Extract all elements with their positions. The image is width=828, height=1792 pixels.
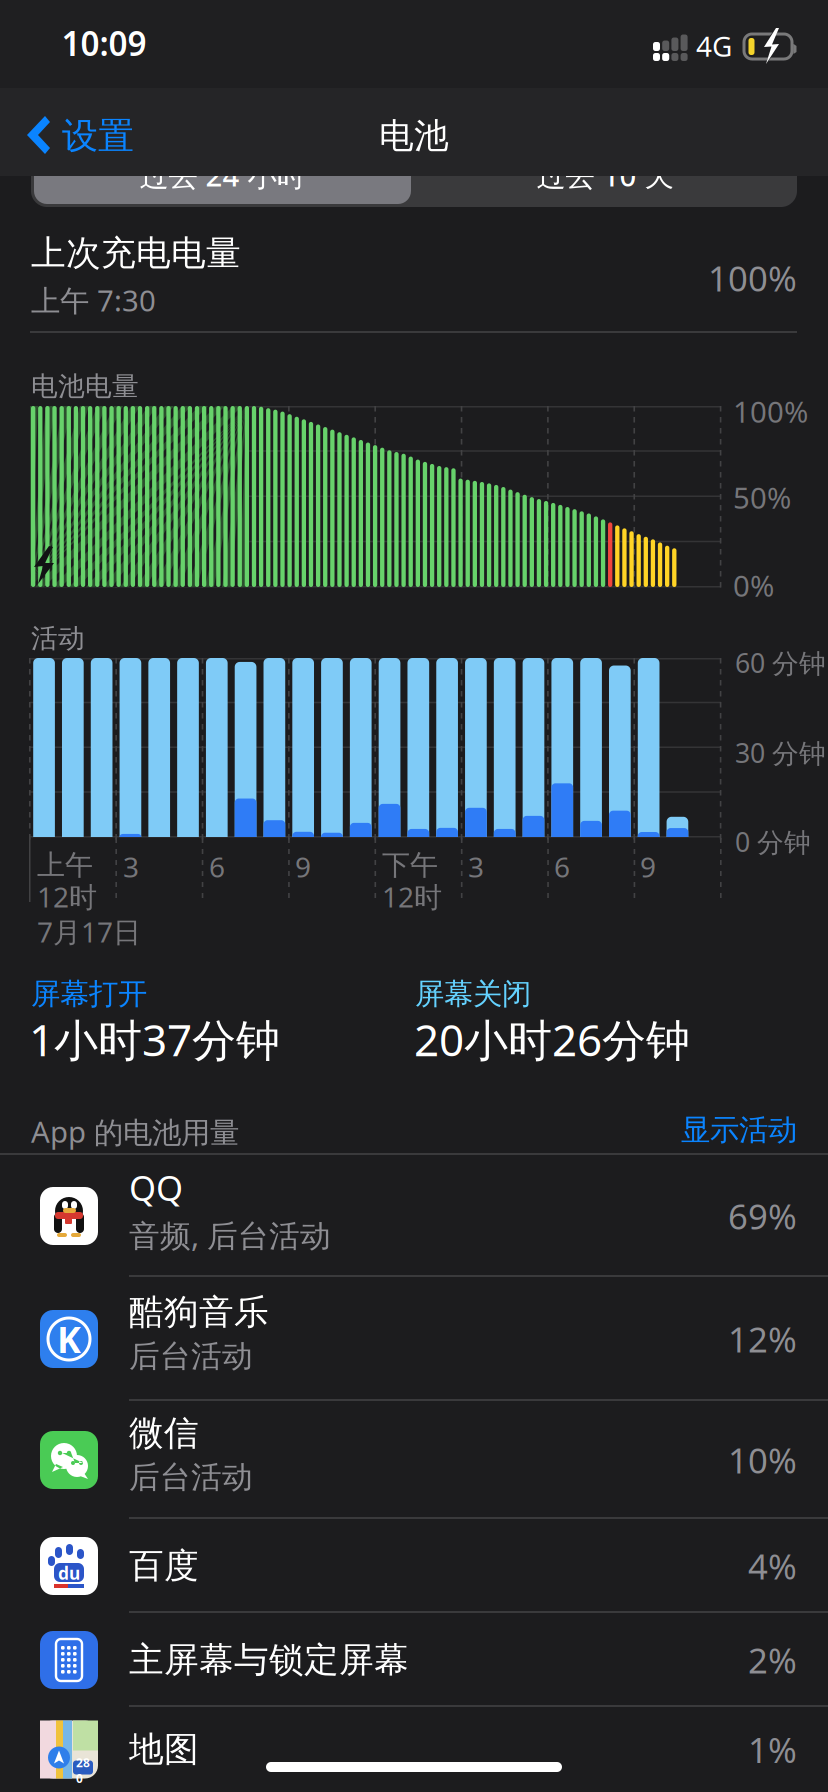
staticText: 12时 [382, 878, 442, 915]
staticText: App 的电池用量 [31, 1112, 239, 1151]
staticText: 屏幕打开 [31, 976, 147, 1012]
staticText: 20小时26分钟 [414, 1010, 690, 1068]
staticText: 6 [209, 848, 225, 885]
staticText: 地图 [129, 1728, 199, 1771]
button[interactable]: 微信 [0, 1401, 828, 1519]
staticText: 2% [748, 1637, 797, 1683]
staticText: 30 分钟 [735, 735, 826, 770]
staticText: 60 分钟 [735, 645, 826, 680]
staticText: 7月17日 [37, 913, 141, 950]
staticText: 9 [295, 848, 311, 885]
staticText: 1% [748, 1726, 797, 1772]
staticText: 微信 [129, 1412, 199, 1454]
staticText: 后台活动 [129, 1337, 253, 1375]
staticText: 4G [696, 27, 732, 65]
staticText: 10:09 [61, 21, 146, 65]
staticText: 100% [733, 392, 808, 431]
button[interactable]: K [0, 1277, 828, 1401]
staticText: 上午 7:30 [31, 281, 156, 320]
staticText: 0% [733, 566, 774, 605]
staticText: 活动 [31, 622, 85, 655]
staticText: 69% [728, 1193, 797, 1239]
staticText: 电池 [379, 115, 449, 157]
staticText: 下午 [382, 848, 438, 882]
staticText: 1小时37分钟 [29, 1010, 280, 1068]
staticText: 12% [728, 1316, 797, 1362]
staticText: 9 [640, 848, 656, 885]
staticText: 10% [728, 1437, 797, 1483]
staticText: 0 分钟 [735, 824, 811, 859]
staticText: 过去 10 天 [536, 155, 673, 194]
staticText: QQ [129, 1165, 183, 1211]
button[interactable]: du [0, 1519, 828, 1613]
staticText: 6 [554, 848, 570, 885]
staticText: 电池电量 [31, 370, 139, 403]
staticText: 280 [76, 1755, 90, 1786]
staticText: 100% [708, 255, 797, 301]
staticText: K [57, 1315, 81, 1363]
staticText: 音频, 后台活动 [129, 1215, 331, 1255]
staticText: 3 [468, 848, 484, 885]
staticText: 上午 [37, 848, 93, 882]
button[interactable]: 280 [0, 1707, 828, 1792]
staticText: 12时 [37, 878, 97, 915]
staticText: 后台活动 [129, 1458, 253, 1496]
button[interactable]: 主屏幕与锁定屏幕 [0, 1613, 828, 1707]
staticText: du [58, 1561, 80, 1584]
staticText: 3 [123, 848, 139, 885]
button[interactable]: 显示活动 [500, 1112, 797, 1148]
staticText: 设置 [62, 114, 134, 158]
staticText: 4% [748, 1543, 797, 1589]
staticText: 上次充电电量 [31, 232, 241, 275]
staticText: 屏幕关闭 [415, 976, 531, 1012]
staticText: 百度 [129, 1545, 199, 1587]
button[interactable]: 设置 [0, 0, 240, 80]
staticText: 酷狗音乐 [129, 1291, 269, 1333]
staticText: 主屏幕与锁定屏幕 [129, 1639, 409, 1681]
staticText: 显示活动 [681, 1112, 797, 1148]
staticText: 过去 24 小时 [139, 155, 305, 194]
staticText: 50% [733, 478, 791, 517]
button[interactable]: QQ [0, 1155, 828, 1277]
